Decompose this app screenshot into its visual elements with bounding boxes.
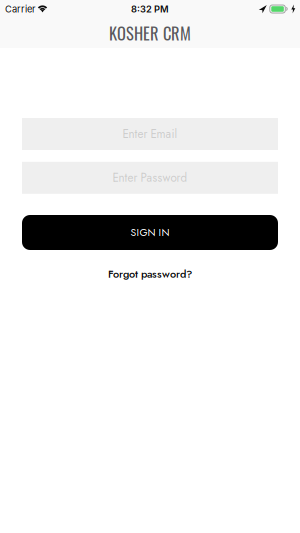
button[interactable]: Forgot password? <box>108 266 192 282</box>
staticText: KOSHER CRM <box>109 21 191 45</box>
staticText: Enter Password <box>112 169 187 186</box>
button[interactable]: SIGN IN <box>22 215 278 250</box>
button[interactable]: Enter Email <box>22 118 278 150</box>
staticText: Enter Email <box>122 126 177 142</box>
staticText: Forgot password? <box>108 266 192 282</box>
staticText: 8:32 PM <box>131 3 169 15</box>
staticText: SIGN IN <box>130 225 169 240</box>
button[interactable]: Enter Password <box>22 162 278 194</box>
staticText: Carrier <box>5 3 36 15</box>
